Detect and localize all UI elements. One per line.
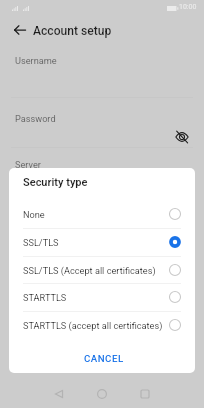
button[interactable]: SSL/TLS (Accept all certificates): [9, 256, 195, 284]
staticText: SSL/TLS (Accept all certificates): [23, 265, 169, 276]
button[interactable]: Navigate up: [8, 18, 32, 42]
staticText: None: [23, 209, 169, 220]
button[interactable]: CANCEL: [76, 349, 132, 368]
staticText: Account setup: [33, 24, 112, 38]
staticText: Password: [15, 113, 56, 124]
button[interactable]: None: [9, 200, 195, 228]
button[interactable]: Toggle password visibility: [172, 127, 192, 147]
button[interactable]: STARTTLS (accept all certificates): [9, 311, 195, 339]
button[interactable]: Recent apps: [132, 381, 158, 407]
staticText: CANCEL: [84, 353, 124, 364]
staticText: 10:00: [179, 3, 197, 11]
button[interactable]: Home: [89, 381, 115, 407]
staticText: STARTTLS (accept all certificates): [23, 320, 169, 331]
button[interactable]: Back: [46, 381, 72, 407]
button[interactable]: SSL/TLS: [9, 228, 195, 256]
staticText: Server: [15, 159, 41, 170]
staticText: STARTTLS: [23, 292, 169, 303]
staticText: Username: [15, 55, 57, 66]
staticText: Security type: [23, 176, 88, 189]
button[interactable]: STARTTLS: [9, 283, 195, 311]
staticText: SSL/TLS: [23, 237, 169, 248]
